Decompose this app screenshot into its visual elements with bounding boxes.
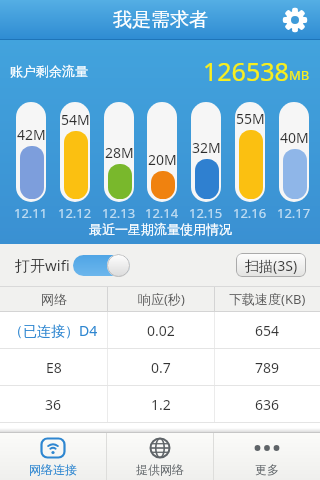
staticText: 网络 bbox=[41, 291, 67, 307]
staticText: 636 bbox=[255, 395, 280, 414]
button[interactable] bbox=[73, 253, 130, 277]
button[interactable]: 更多 bbox=[214, 433, 320, 480]
staticText: 打开wifi bbox=[15, 255, 70, 275]
staticText: 提供网络 bbox=[136, 462, 184, 477]
staticText: E8 bbox=[46, 358, 62, 377]
staticText: 12.16 bbox=[233, 204, 267, 222]
staticText: 下载速度(KB) bbox=[229, 290, 306, 308]
button[interactable] bbox=[283, 8, 307, 32]
button[interactable]: 扫描(3S) bbox=[236, 253, 306, 277]
staticText: 我是需求者 bbox=[113, 8, 208, 32]
button[interactable]: 提供网络 bbox=[107, 433, 213, 480]
staticText: 12.14 bbox=[145, 204, 179, 222]
staticText: MB bbox=[289, 66, 310, 84]
button[interactable]: E8 bbox=[0, 349, 320, 386]
staticText: 32M bbox=[192, 138, 221, 157]
button[interactable]: 36 bbox=[0, 386, 320, 423]
staticText: 36 bbox=[45, 395, 62, 414]
staticText: 扫描(3S) bbox=[245, 256, 298, 275]
button[interactable]: （已连接）D4 bbox=[0, 312, 320, 349]
staticText: 1.2 bbox=[151, 395, 171, 414]
staticText: 0.7 bbox=[151, 358, 171, 377]
staticText: 12.13 bbox=[102, 204, 136, 222]
staticText: 28M bbox=[105, 143, 134, 162]
staticText: 更多 bbox=[255, 462, 279, 477]
staticText: 12.11 bbox=[14, 204, 48, 222]
staticText: 响应(秒) bbox=[138, 290, 185, 308]
staticText: 0.02 bbox=[147, 321, 175, 340]
staticText: 42M bbox=[17, 125, 46, 144]
staticText: 最近一星期流量使用情况 bbox=[89, 221, 232, 237]
staticText: 网络连接 bbox=[29, 462, 77, 477]
staticText: 账户剩余流量 bbox=[10, 63, 88, 79]
staticText: 12.15 bbox=[189, 204, 223, 222]
staticText: （已连接）D4 bbox=[9, 321, 98, 340]
button[interactable]: 网络连接 bbox=[0, 433, 106, 480]
staticText: 126538 bbox=[203, 54, 289, 88]
staticText: 54M bbox=[61, 110, 90, 129]
staticText: 654 bbox=[255, 321, 280, 340]
staticText: 12.17 bbox=[277, 204, 311, 222]
staticText: 40M bbox=[280, 128, 309, 147]
staticText: 12.12 bbox=[58, 204, 92, 222]
staticText: 789 bbox=[255, 358, 280, 377]
staticText: 55M bbox=[236, 109, 265, 128]
staticText: 20M bbox=[148, 150, 177, 169]
